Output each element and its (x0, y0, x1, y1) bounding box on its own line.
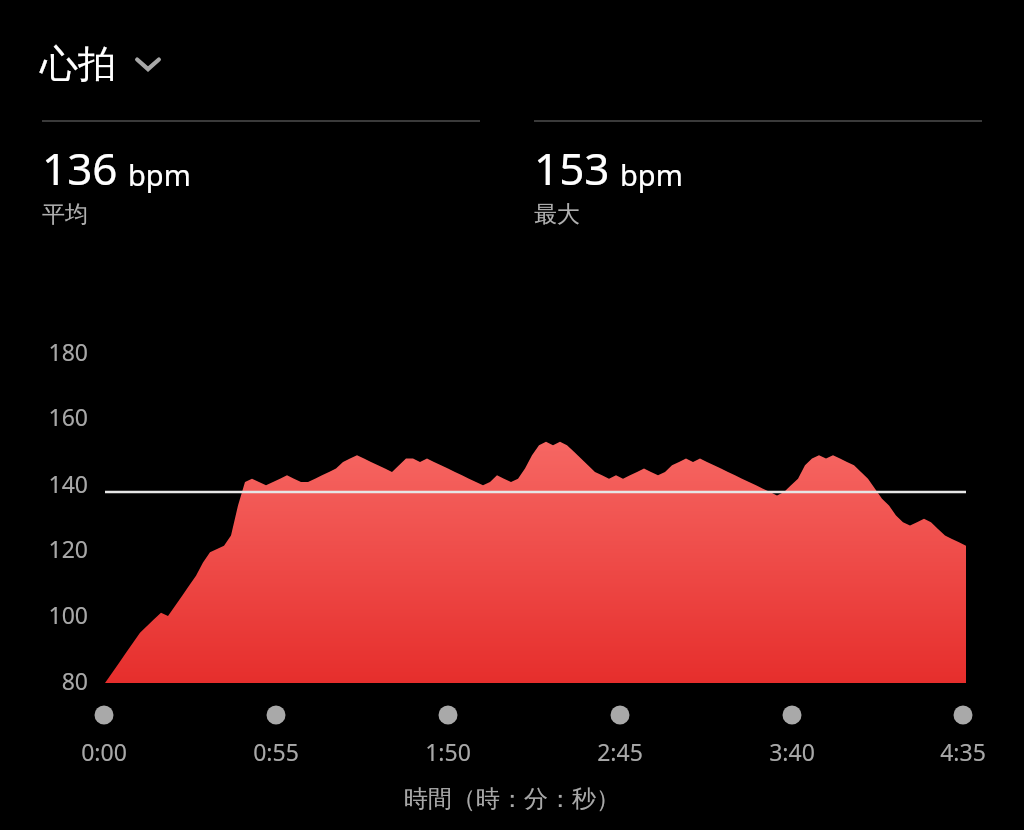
staticText: bpm (620, 155, 683, 194)
staticText: 1:50 (425, 736, 471, 767)
staticText: 0:00 (81, 736, 127, 767)
staticText: 160 (48, 401, 88, 432)
staticText: 時間（時：分：秒） (404, 784, 620, 814)
staticText: 100 (48, 599, 88, 630)
staticText: 平均 (42, 200, 88, 229)
button[interactable]: 心拍 (40, 40, 164, 88)
other: Expand metric selector (132, 48, 164, 80)
staticText: 80 (61, 665, 88, 696)
staticText: 180 (48, 336, 88, 367)
staticText: 153 (534, 138, 610, 198)
staticText: 最大 (534, 200, 580, 229)
staticText: 120 (48, 533, 88, 564)
staticText: 4:35 (940, 736, 986, 767)
staticText: 136 (42, 138, 118, 198)
staticText: 0:55 (253, 736, 299, 767)
staticText: 2:45 (597, 736, 643, 767)
button[interactable]: 153 (534, 120, 982, 229)
staticText: 3:40 (769, 736, 815, 767)
staticText: 心拍 (40, 40, 116, 88)
staticText: bpm (128, 155, 191, 194)
staticText: 140 (48, 468, 88, 499)
button[interactable]: 136 (42, 120, 480, 229)
